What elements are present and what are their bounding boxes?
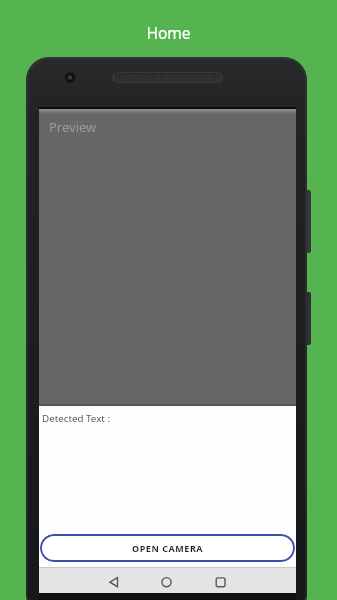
staticText: Preview bbox=[49, 118, 97, 136]
staticText: Home bbox=[0, 22, 337, 43]
button[interactable]: OPEN CAMERA bbox=[40, 534, 295, 562]
button[interactable] bbox=[157, 573, 176, 591]
staticText: OPEN CAMERA bbox=[132, 542, 204, 554]
button[interactable] bbox=[104, 573, 123, 591]
button[interactable] bbox=[211, 573, 230, 591]
staticText: Detected Text : bbox=[42, 412, 111, 425]
